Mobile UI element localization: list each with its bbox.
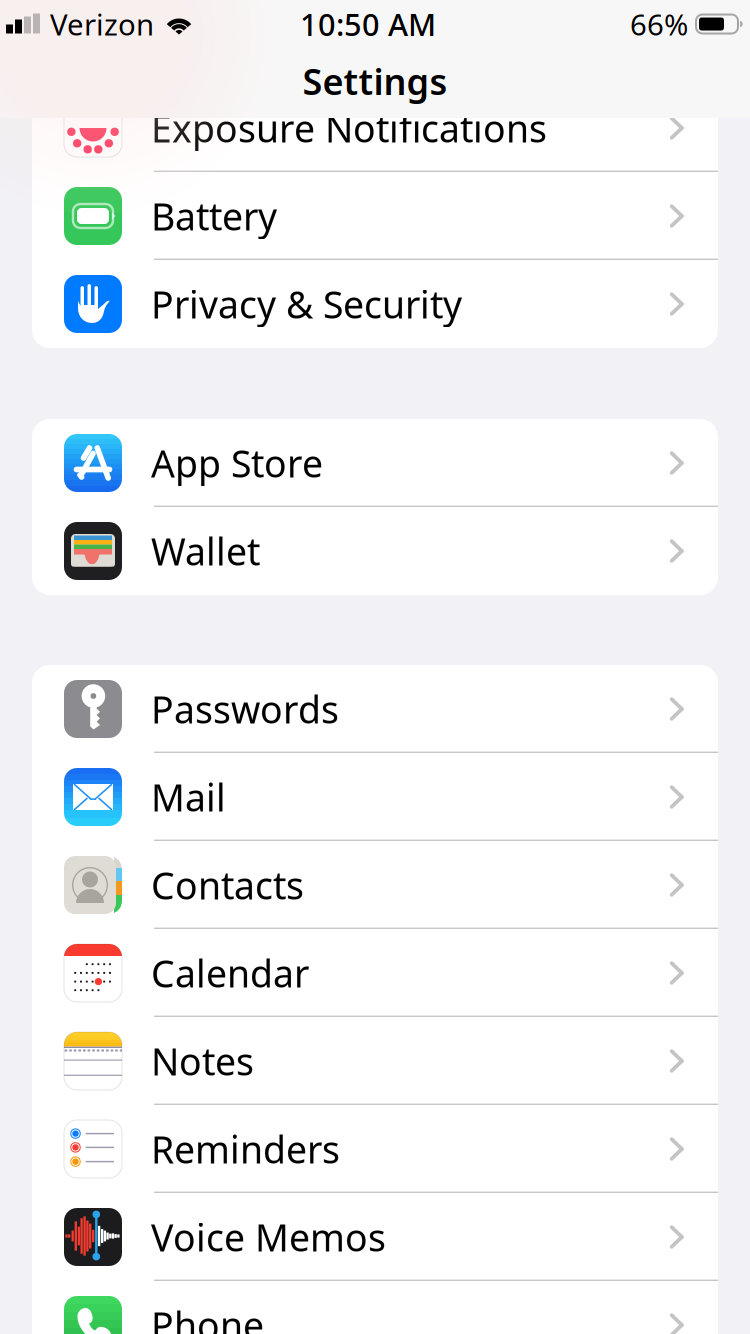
button[interactable]: Phone xyxy=(32,1281,718,1334)
staticText: Exposure Notifications xyxy=(151,103,547,153)
button[interactable]: Exposure Notifications xyxy=(32,84,718,172)
button[interactable]: Mail xyxy=(32,753,718,841)
button[interactable]: App Store xyxy=(32,419,718,507)
button[interactable]: Voice Memos xyxy=(32,1193,718,1281)
staticText: Contacts xyxy=(151,860,304,910)
button[interactable]: Passwords xyxy=(32,665,718,753)
button[interactable]: Privacy & Security xyxy=(32,260,718,348)
staticText: Mail xyxy=(151,772,226,822)
button[interactable]: Notes xyxy=(32,1017,718,1105)
staticText: App Store xyxy=(151,438,323,488)
staticText: Wallet xyxy=(151,526,260,576)
staticText: Voice Memos xyxy=(151,1212,386,1262)
button[interactable]: Battery xyxy=(32,172,718,260)
staticText: Passwords xyxy=(151,684,339,734)
staticText: Phone xyxy=(151,1300,264,1334)
button[interactable]: Reminders xyxy=(32,1105,718,1193)
staticText: Settings xyxy=(302,57,447,105)
staticText: 66% xyxy=(630,4,688,43)
staticText: Verizon xyxy=(50,4,154,43)
staticText: Reminders xyxy=(151,1124,340,1174)
button[interactable]: Calendar xyxy=(32,929,718,1017)
staticText: Battery xyxy=(151,191,277,241)
button[interactable]: Contacts xyxy=(32,841,718,929)
staticText: 10:50 AM xyxy=(300,4,436,44)
staticText: Calendar xyxy=(151,948,309,998)
staticText: Privacy & Security xyxy=(151,279,462,329)
staticText: Notes xyxy=(151,1036,254,1086)
button[interactable]: Wallet xyxy=(32,507,718,595)
